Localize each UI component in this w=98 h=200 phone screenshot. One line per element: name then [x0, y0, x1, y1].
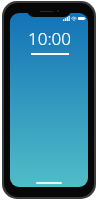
staticText: 10:00: [28, 27, 71, 50]
other: Status: signal, wifi, battery: [63, 16, 86, 21]
button[interactable]: 10:00: [28, 27, 71, 55]
other: Home: [36, 182, 62, 184]
